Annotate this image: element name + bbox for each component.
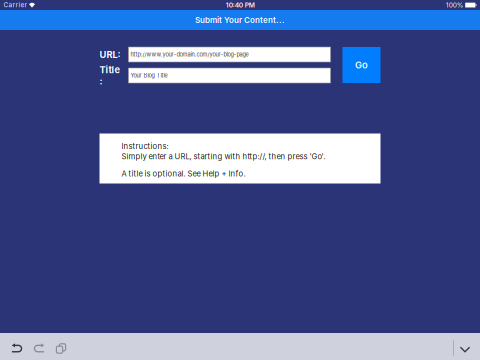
staticText: Carrier xyxy=(3,1,26,9)
staticText: Go xyxy=(355,59,368,71)
staticText: A title is optional. See Help + Info. xyxy=(121,169,245,178)
staticText: Your Blog Title xyxy=(130,72,167,79)
button[interactable]: Undo xyxy=(6,333,28,360)
staticText: Title: xyxy=(99,64,120,87)
button[interactable]: Paste xyxy=(50,333,72,360)
staticText: 100% xyxy=(446,1,464,9)
staticText: http://www.your-domain.com/your-blog-pag… xyxy=(130,51,248,58)
staticText: 10:40 PM xyxy=(226,1,255,9)
button[interactable]: Go xyxy=(342,47,380,83)
button[interactable]: Hide keyboard xyxy=(454,333,476,360)
staticText: URL: xyxy=(99,49,120,60)
button[interactable]: Redo xyxy=(28,333,50,360)
staticText: Submit Your Content... xyxy=(195,15,285,25)
staticText: Simply enter a URL, starting with http:/… xyxy=(121,152,325,161)
staticText: Instructions: xyxy=(121,141,168,151)
